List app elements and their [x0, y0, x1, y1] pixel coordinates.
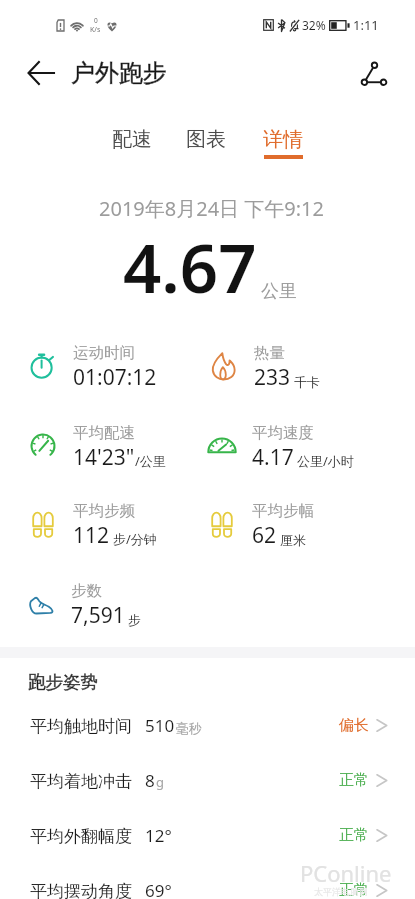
staticText: 7,591	[71, 601, 125, 630]
staticText: 8	[145, 769, 155, 792]
staticText: 步数	[71, 581, 102, 601]
button[interactable]: 图表	[176, 122, 236, 164]
button[interactable]: 配速	[102, 122, 162, 164]
staticText: 公里/小时	[297, 452, 354, 470]
button[interactable]: 平均外翻幅度	[0, 808, 415, 863]
staticText: 12°	[145, 824, 172, 847]
staticText: 正常	[339, 826, 369, 845]
staticText: 跑步姿势	[28, 671, 98, 693]
staticText: 热量	[254, 343, 285, 363]
staticText: 配速	[112, 127, 152, 152]
staticText: 步/分钟	[113, 530, 157, 548]
staticText: 厘米	[280, 532, 306, 548]
staticText: 平均外翻幅度	[30, 826, 132, 847]
staticText: 偏长	[339, 716, 369, 735]
staticText: 平均着地冲击	[30, 771, 132, 792]
staticText: 62	[252, 521, 277, 550]
staticText: 32%	[302, 17, 326, 33]
staticText: 公里	[261, 280, 297, 303]
staticText: 平均触地时间	[30, 716, 132, 737]
staticText: 平均配速	[73, 423, 135, 443]
staticText: 平均摆动角度	[30, 881, 132, 899]
button[interactable]: 平均触地时间	[0, 698, 415, 753]
button[interactable]: 平均摆动角度	[0, 863, 415, 899]
staticText: 毫秒	[176, 720, 202, 736]
staticText: 运动时间	[73, 343, 135, 363]
staticText: 太平洋电脑网	[314, 886, 368, 897]
staticText: PConline	[300, 858, 392, 888]
staticText: 详情	[263, 127, 303, 152]
staticText: 跑步姿势	[28, 671, 98, 693]
staticText: 图表	[186, 127, 226, 152]
staticText: 1:11	[353, 16, 379, 34]
staticText: 69°	[145, 879, 172, 899]
staticText: K/s	[90, 25, 101, 35]
staticText: 2019年8月24日 下午9:12	[99, 195, 324, 222]
staticText: 千卡	[294, 374, 320, 390]
staticText: 510	[145, 714, 175, 737]
button[interactable]: Share	[350, 50, 397, 97]
staticText: 01:07:12	[73, 363, 157, 392]
staticText: 平均步频	[73, 501, 135, 521]
button[interactable]: 详情	[253, 122, 313, 164]
staticText: 0	[94, 16, 98, 25]
staticText: 14'23"	[73, 443, 135, 472]
staticText: 4.67	[123, 221, 257, 312]
staticText: 户外跑步	[71, 58, 167, 88]
staticText: 平均步幅	[252, 501, 314, 521]
staticText: 4.17	[252, 443, 294, 472]
staticText: 112	[73, 521, 110, 550]
button[interactable]: 平均着地冲击	[0, 753, 415, 808]
staticText: 户外跑步	[71, 58, 167, 88]
staticText: 平均速度	[252, 423, 314, 443]
button[interactable]: Back	[24, 50, 58, 96]
staticText: 233	[254, 363, 291, 392]
staticText: 正常	[339, 771, 369, 790]
staticText: g	[156, 773, 164, 791]
staticText: 正常	[339, 881, 369, 899]
staticText: 步	[128, 612, 141, 628]
staticText: /公里	[135, 452, 166, 470]
